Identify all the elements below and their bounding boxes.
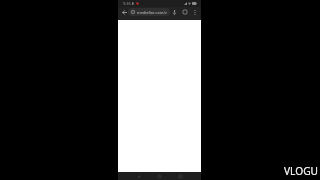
button[interactable]: mediafire.com/v (128, 8, 170, 16)
button[interactable]: Voice search (170, 8, 178, 16)
button[interactable]: Back (120, 8, 128, 16)
button[interactable]: Home (155, 172, 164, 180)
button[interactable]: More options (191, 8, 199, 16)
staticText: mediafire.com/v (137, 10, 167, 15)
button[interactable]: Switch tabs (181, 8, 189, 16)
staticText: VLOGU (284, 164, 319, 178)
button[interactable]: Recent apps (176, 172, 185, 180)
button[interactable]: Back (134, 172, 143, 180)
staticText: 9:36 (123, 1, 131, 6)
